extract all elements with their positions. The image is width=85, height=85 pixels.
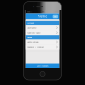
staticText: Edit	[54, 15, 57, 18]
staticText: ●●●○○	[27, 11, 32, 13]
button[interactable]: Edit	[53, 15, 58, 18]
staticText: Home group	[27, 41, 38, 43]
staticText: Profile	[37, 15, 47, 18]
button[interactable]: Sobriety date	[26, 30, 59, 35]
button[interactable]: Save changes	[26, 63, 59, 68]
staticText: ACCOUNT	[27, 22, 34, 24]
staticText: Sobriety date	[27, 31, 40, 34]
button[interactable]: Sponsor / contact	[26, 44, 59, 49]
staticText: Sponsor / contact	[27, 46, 44, 48]
staticText: Save changes	[36, 64, 48, 67]
staticText: Username	[27, 26, 36, 29]
staticText: 9:41	[41, 11, 44, 13]
staticText: GROUP	[27, 36, 32, 39]
button[interactable]: Username	[26, 25, 59, 30]
button[interactable]: Home group	[26, 39, 59, 44]
